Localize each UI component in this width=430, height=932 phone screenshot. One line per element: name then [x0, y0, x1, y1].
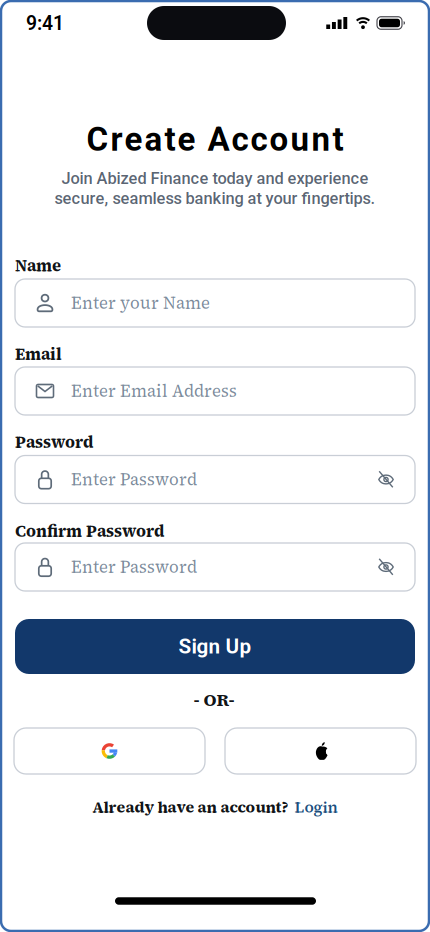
button[interactable]	[14, 728, 205, 774]
button[interactable]: Enter your Name	[15, 279, 415, 327]
button[interactable]: Login	[294, 796, 337, 818]
staticText: Enter Password	[71, 556, 197, 578]
button[interactable]	[225, 728, 416, 774]
staticText: - OR-	[193, 688, 234, 712]
button[interactable]: Enter Email Address	[15, 367, 415, 415]
staticText: Login	[294, 796, 337, 818]
staticText: 9:41	[26, 12, 64, 35]
staticText: Email	[15, 343, 62, 365]
staticText: Enter Email Address	[71, 380, 237, 402]
staticText: Password	[15, 431, 94, 453]
staticText: secure, seamless banking at your fingert…	[54, 189, 375, 208]
button[interactable]: Enter Password	[15, 543, 415, 591]
staticText: Enter your Name	[71, 292, 210, 314]
staticText: Enter Password	[71, 468, 197, 491]
staticText: Already have an account?	[92, 796, 288, 818]
staticText: Sign Up	[178, 634, 251, 659]
staticText: Join Abized Finance today and experience	[61, 169, 368, 188]
button[interactable]: Sign Up	[15, 619, 415, 674]
button[interactable]: Enter Password	[15, 455, 415, 503]
staticText: Name	[15, 254, 61, 277]
staticText: Create Account	[86, 120, 343, 159]
staticText: Confirm Password	[15, 520, 165, 542]
